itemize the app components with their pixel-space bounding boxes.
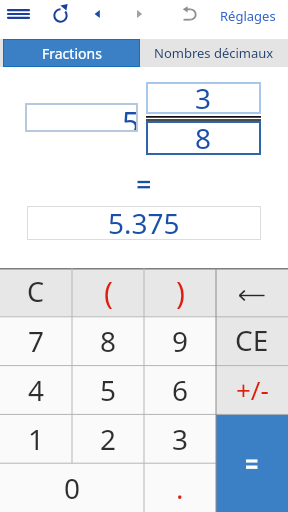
button[interactable] — [50, 5, 71, 26]
staticText: ( — [104, 272, 113, 313]
button[interactable]: 9 — [144, 316, 216, 365]
button[interactable] — [130, 5, 148, 25]
button[interactable]: Fractions — [3, 39, 140, 67]
button[interactable]: 8 — [146, 121, 261, 155]
button[interactable] — [180, 4, 201, 26]
button[interactable]: 0 — [0, 463, 144, 512]
button[interactable]: 2 — [72, 414, 144, 463]
staticText: 3 — [172, 420, 189, 458]
button[interactable]: 1 — [0, 414, 72, 463]
button[interactable]: 5 — [72, 365, 144, 414]
staticText: CE — [235, 321, 269, 359]
button[interactable]: Réglages — [220, 0, 288, 31]
button[interactable]: C — [0, 268, 72, 316]
staticText: 5 — [100, 371, 117, 409]
button[interactable]: 6 — [144, 365, 216, 414]
staticText: 4 — [28, 371, 45, 409]
button[interactable]: Nombres décimaux — [140, 39, 288, 67]
staticText: 5 — [122, 102, 140, 131]
staticText: 6 — [172, 371, 189, 409]
button[interactable]: 4 — [0, 365, 72, 414]
staticText: Fractions — [42, 44, 102, 63]
button[interactable] — [4, 5, 32, 25]
button[interactable]: ) — [144, 268, 216, 316]
staticText: Réglages — [220, 7, 276, 25]
button[interactable]: CE — [216, 316, 288, 365]
staticText: Nombres décimaux — [154, 44, 274, 62]
staticText: +/- — [236, 372, 269, 407]
staticText: C — [27, 273, 45, 310]
button[interactable] — [216, 268, 288, 316]
staticText: 8 — [195, 119, 212, 153]
staticText: 8 — [100, 322, 117, 360]
button[interactable]: 3 — [144, 414, 216, 463]
staticText: 9 — [172, 322, 189, 360]
button[interactable]: ( — [72, 268, 144, 316]
staticText: ) — [176, 272, 185, 313]
staticText: 0 — [64, 469, 81, 507]
staticText: 7 — [28, 322, 45, 360]
staticText: 2 — [100, 420, 117, 458]
button[interactable]: 8 — [72, 316, 144, 365]
button[interactable]: 5 — [25, 103, 138, 132]
button[interactable] — [216, 414, 288, 512]
staticText: 1 — [28, 420, 45, 458]
staticText: 3 — [195, 79, 212, 111]
button[interactable]: 7 — [0, 316, 72, 365]
button[interactable]: +/- — [216, 365, 288, 414]
button[interactable]: 3 — [146, 82, 261, 114]
staticText: 5.375 — [108, 204, 180, 238]
button[interactable] — [88, 5, 106, 25]
staticText: . — [176, 469, 184, 507]
button[interactable]: . — [144, 463, 216, 512]
